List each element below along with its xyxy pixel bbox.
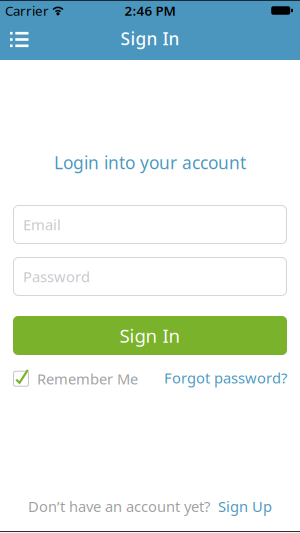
button[interactable]: Remember Me [13, 369, 138, 388]
staticText: Password [23, 267, 90, 286]
staticText: Sign Up [218, 496, 272, 516]
button[interactable]: Email [0, 205, 300, 244]
staticText: Sign In [120, 27, 179, 50]
staticText: 2:46 PM [124, 2, 175, 19]
staticText: Forgot password? [164, 368, 287, 387]
button[interactable]: Forgot password? [164, 369, 287, 388]
staticText: Login into your account [54, 151, 246, 174]
staticText: Sign In [119, 323, 180, 348]
staticText: Don’t have an account yet? [28, 496, 210, 516]
button[interactable]: Password [0, 257, 300, 296]
staticText: Carrier [5, 2, 49, 19]
staticText: Email [23, 215, 61, 234]
button[interactable]: Menu [0, 20, 28, 59]
staticText: Remember Me [37, 369, 138, 388]
button[interactable]: Sign In [0, 316, 300, 355]
button[interactable]: Sign Up [218, 496, 272, 516]
